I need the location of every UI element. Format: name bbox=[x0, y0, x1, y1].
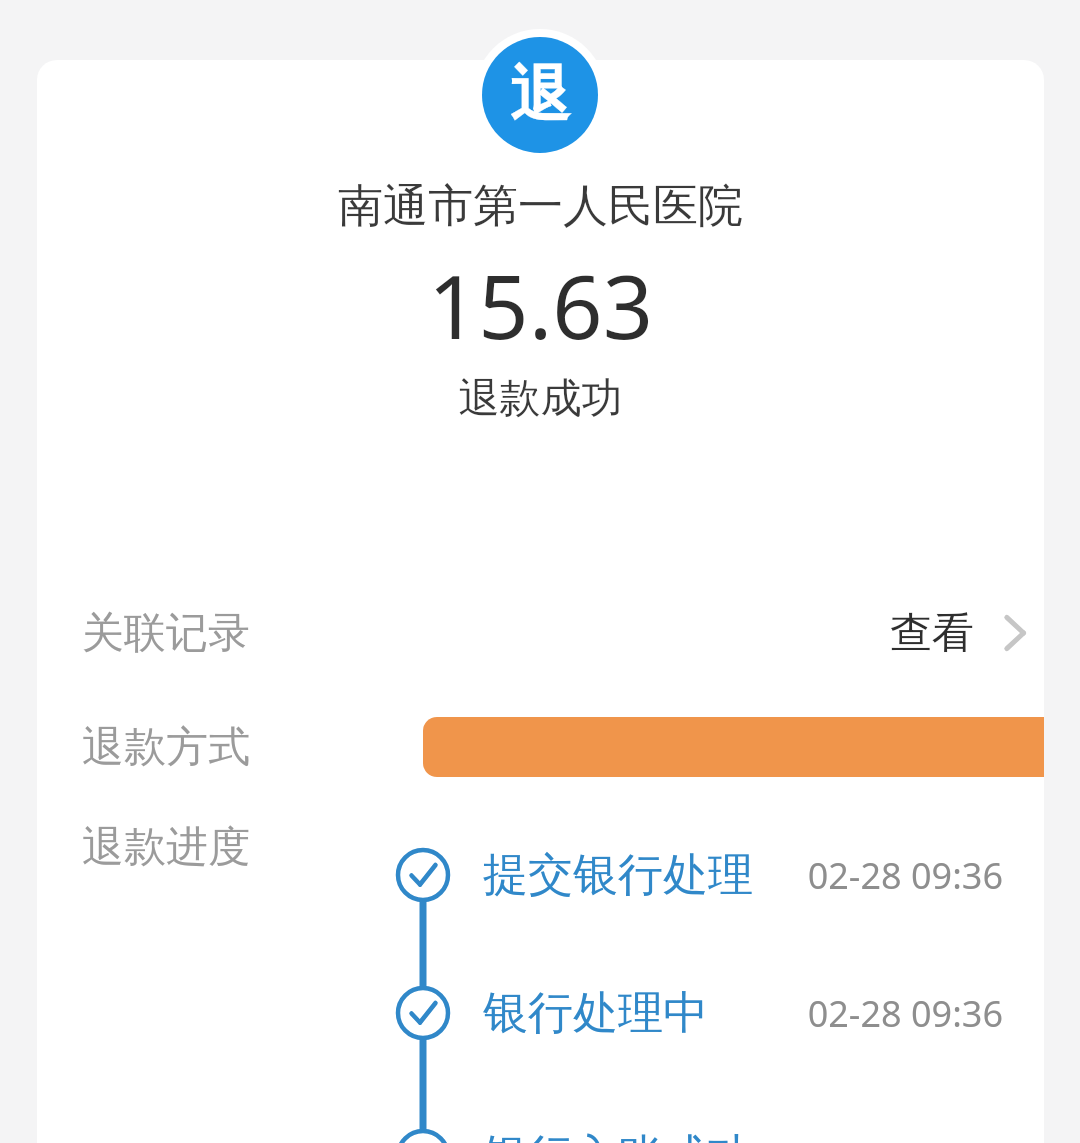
staticText: 退 bbox=[510, 57, 570, 133]
staticText: 退款进度 bbox=[82, 821, 250, 874]
staticText: 银行入账成功 bbox=[483, 1128, 753, 1143]
staticText: 关联记录 bbox=[82, 607, 250, 660]
staticText: 15.63 bbox=[37, 245, 1044, 365]
button[interactable]: 银行处理中 bbox=[37, 980, 1044, 1046]
staticText: 02-28 09:36 bbox=[807, 851, 1003, 900]
staticText: 查看 bbox=[890, 607, 974, 660]
staticText: 02-28 09:36 bbox=[807, 989, 1003, 1038]
staticText: 提交银行处理 bbox=[483, 847, 753, 904]
button[interactable]: 关联记录 bbox=[37, 583, 1044, 683]
button[interactable]: 提交银行处理 bbox=[37, 842, 1044, 908]
staticText: 退款成功 bbox=[37, 373, 1044, 425]
other: 查看关联记录 bbox=[1002, 612, 1026, 654]
staticText: 南通市第一人民医院 bbox=[37, 178, 1044, 235]
staticText: 退款方式 bbox=[82, 721, 250, 774]
button[interactable]: 银行入账成功 bbox=[37, 1123, 1044, 1143]
staticText: 银行处理中 bbox=[483, 985, 708, 1042]
